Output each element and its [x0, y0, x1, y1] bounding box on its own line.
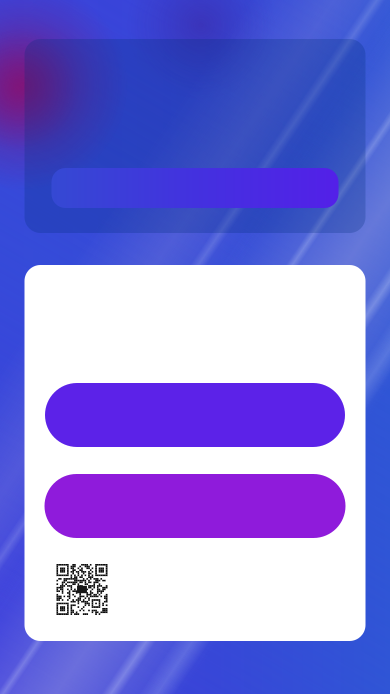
button[interactable] [45, 383, 345, 447]
button[interactable] [51, 168, 338, 208]
button[interactable] [44, 474, 345, 538]
